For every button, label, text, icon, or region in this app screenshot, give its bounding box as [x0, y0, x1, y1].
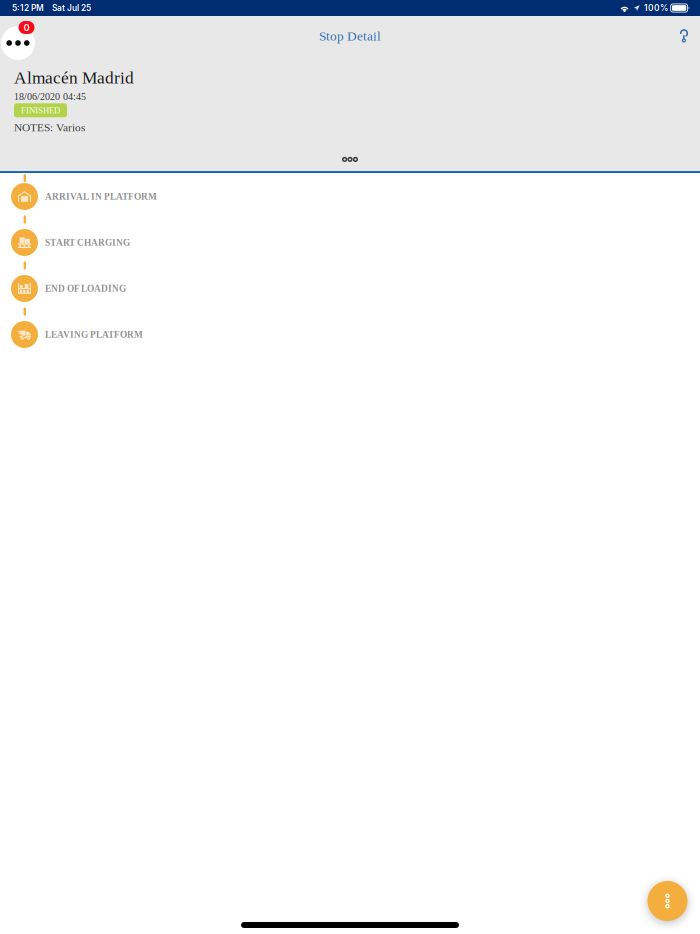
button[interactable]: Actions: [647, 881, 687, 921]
staticText: 0: [23, 22, 29, 33]
staticText: Stop Detail: [319, 29, 381, 43]
staticText: FINISHED: [21, 105, 60, 115]
button[interactable]: END OF LOADING: [0, 275, 700, 302]
button[interactable]: ARRIVAL IN PLATFORM: [0, 183, 700, 210]
staticText: Sat Jul 25: [52, 3, 91, 13]
staticText: ARRIVAL IN PLATFORM: [45, 191, 157, 202]
button[interactable]: START CHARGING: [0, 229, 700, 256]
button[interactable]: More options: [0, 16, 40, 60]
button[interactable]: LEAVING PLATFORM: [0, 321, 700, 348]
staticText: Almacén Madrid: [14, 68, 134, 87]
staticText: START CHARGING: [45, 237, 130, 248]
staticText: END OF LOADING: [45, 283, 126, 294]
staticText: NOTES: Varios: [14, 121, 85, 134]
staticText: LEAVING PLATFORM: [45, 329, 143, 340]
staticText: 5:12 PM: [12, 3, 44, 13]
staticText: 100%: [644, 3, 668, 13]
button[interactable]: Help: [674, 24, 694, 48]
staticText: 18/06/2020 04:45: [14, 91, 86, 102]
